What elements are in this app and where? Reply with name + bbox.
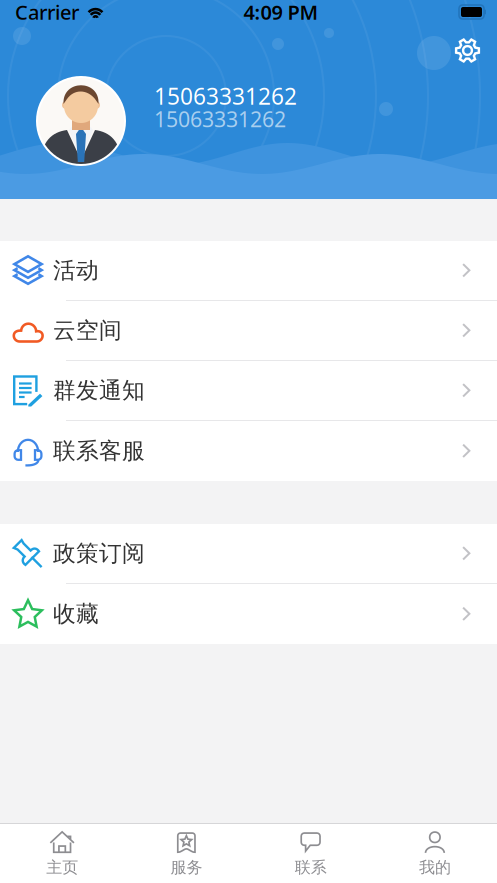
staticText: 服务 bbox=[170, 858, 202, 877]
staticText: 主页 bbox=[46, 858, 78, 877]
staticText: 云空间 bbox=[53, 317, 122, 344]
button[interactable]: 服务 bbox=[124, 824, 248, 883]
staticText: 15063331262 bbox=[154, 81, 297, 111]
staticText: 活动 bbox=[53, 257, 99, 284]
button[interactable]: Settings bbox=[445, 28, 490, 73]
staticText: 联系 bbox=[295, 858, 327, 877]
staticText: Carrier bbox=[15, 0, 79, 25]
staticText: 15063331262 bbox=[154, 105, 286, 133]
button[interactable]: 群发通知 bbox=[0, 361, 497, 421]
button[interactable]: 收藏 bbox=[0, 584, 497, 644]
staticText: 我的 bbox=[419, 858, 451, 877]
button[interactable]: 我的 bbox=[373, 824, 497, 883]
button[interactable]: 主页 bbox=[0, 824, 124, 883]
button[interactable]: 云空间 bbox=[0, 301, 497, 361]
button[interactable]: 政策订阅 bbox=[0, 524, 497, 584]
staticText: 政策订阅 bbox=[53, 540, 145, 567]
staticText: 4:09 PM bbox=[243, 0, 318, 25]
staticText: 收藏 bbox=[53, 600, 99, 628]
button[interactable]: 活动 bbox=[0, 241, 497, 301]
staticText: 联系客服 bbox=[53, 437, 145, 465]
button[interactable]: 联系 bbox=[248, 824, 373, 883]
button[interactable]: 联系客服 bbox=[0, 421, 497, 481]
staticText: 群发通知 bbox=[53, 377, 145, 404]
